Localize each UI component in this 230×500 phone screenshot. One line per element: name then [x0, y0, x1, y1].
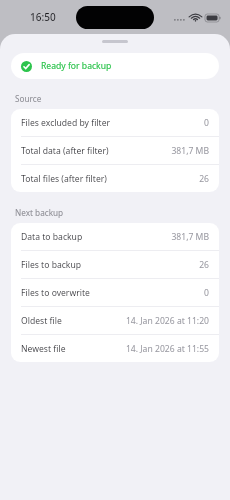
staticText: 26: [199, 259, 209, 271]
staticText: Total files (after filter): [21, 173, 107, 185]
button[interactable]: Files to overwrite: [11, 279, 219, 306]
staticText: Files to overwrite: [21, 287, 90, 299]
staticText: 14. Jan 2026 at 11:20: [125, 315, 209, 327]
staticText: 16:50: [30, 10, 56, 24]
staticText: 381,7 MB: [171, 231, 209, 243]
staticText: 14. Jan 2026 at 11:55: [125, 343, 209, 355]
staticText: Data to backup: [21, 231, 83, 243]
button[interactable]: Total data (after filter): [11, 137, 219, 164]
staticText: 381,7 MB: [171, 145, 209, 157]
button[interactable]: Total files (after filter): [11, 165, 219, 192]
staticText: 0: [204, 117, 209, 129]
staticText: Files to backup: [21, 259, 82, 271]
staticText: Files excluded by filter: [21, 117, 111, 129]
button[interactable]: Files to backup: [11, 251, 219, 278]
staticText: Ready for backup: [41, 60, 112, 72]
staticText: 26: [199, 173, 209, 185]
staticText: Total data (after filter): [21, 145, 109, 157]
button[interactable]: Files excluded by filter: [11, 109, 219, 136]
staticText: Newest file: [21, 343, 66, 355]
button[interactable]: Data to backup: [11, 223, 219, 250]
staticText: Source: [15, 93, 42, 104]
staticText: Oldest file: [21, 315, 62, 327]
button[interactable]: Oldest file: [11, 307, 219, 334]
staticText: 0: [204, 287, 209, 299]
button[interactable]: Newest file: [11, 335, 219, 362]
staticText: Next backup: [15, 207, 64, 218]
button[interactable]: Ready for backup: [11, 53, 219, 79]
